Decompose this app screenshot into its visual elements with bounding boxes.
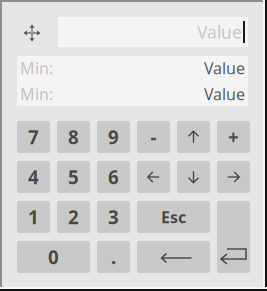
button[interactable]: 9 xyxy=(97,121,130,153)
button[interactable]: Backspace xyxy=(137,241,210,273)
button[interactable]: 6 xyxy=(97,161,130,193)
staticText: Min: xyxy=(20,57,53,79)
staticText: 5 xyxy=(68,165,79,189)
button[interactable]: 2 xyxy=(57,201,90,233)
button[interactable]: 8 xyxy=(57,121,90,153)
button[interactable]: - xyxy=(137,121,170,153)
button[interactable]: Right xyxy=(217,161,250,193)
button[interactable]: 0 xyxy=(17,241,90,273)
staticText: 9 xyxy=(108,125,119,149)
staticText: 8 xyxy=(68,125,79,149)
staticText: Value xyxy=(204,57,245,79)
staticText: - xyxy=(150,125,156,149)
button[interactable]: Enter xyxy=(217,201,250,273)
button[interactable]: 4 xyxy=(17,161,50,193)
staticText: 6 xyxy=(108,165,119,189)
button[interactable]: + xyxy=(217,121,250,153)
button[interactable]: 3 xyxy=(97,201,130,233)
button[interactable]: Up xyxy=(177,121,210,153)
staticText: 1 xyxy=(28,205,39,229)
button[interactable]: Left xyxy=(137,161,170,193)
staticText: 3 xyxy=(108,205,119,229)
staticText: 7 xyxy=(28,125,39,149)
staticText: . xyxy=(111,245,116,269)
button[interactable]: Move xyxy=(17,18,47,48)
button[interactable]: 1 xyxy=(17,201,50,233)
button[interactable]: 5 xyxy=(57,161,90,193)
staticText: 4 xyxy=(28,165,39,189)
staticText: Value xyxy=(204,83,245,105)
staticText: Value xyxy=(197,20,242,43)
button[interactable]: . xyxy=(97,241,130,273)
staticText: 0 xyxy=(48,245,59,269)
button[interactable]: Esc xyxy=(137,201,210,233)
staticText: 2 xyxy=(68,205,79,229)
button[interactable]: Down xyxy=(177,161,210,193)
staticText: Esc xyxy=(161,206,186,228)
staticText: Min: xyxy=(20,83,53,105)
button[interactable]: 7 xyxy=(17,121,50,153)
staticText: + xyxy=(228,125,239,149)
